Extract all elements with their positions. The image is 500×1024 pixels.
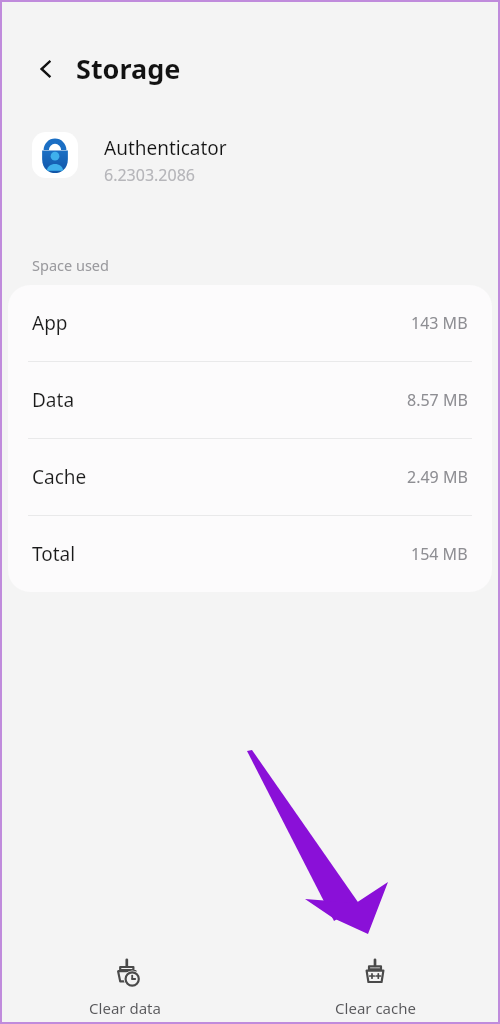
staticText: 6.2303.2086 (104, 164, 195, 186)
staticText: Clear cache (335, 998, 416, 1018)
staticText: Storage (76, 50, 181, 87)
staticText: 2.49 MB (407, 466, 468, 488)
button[interactable]: Clear data (0, 920, 250, 1024)
staticText: 143 MB (411, 312, 468, 334)
staticText: Total (32, 541, 76, 567)
staticText: Authenticator (104, 135, 227, 161)
staticText: Clear data (89, 998, 161, 1018)
button[interactable]: Clear cache (250, 920, 500, 1024)
button[interactable]: Data (8, 362, 492, 438)
button[interactable]: Total (8, 516, 492, 592)
button[interactable]: Back (26, 49, 66, 89)
button[interactable]: App (8, 285, 492, 361)
staticText: 154 MB (411, 543, 468, 565)
staticText: Data (32, 387, 75, 413)
staticText: Cache (32, 464, 87, 490)
staticText: 8.57 MB (407, 389, 468, 411)
staticText: Space used (32, 255, 109, 275)
button[interactable]: Cache (8, 439, 492, 515)
staticText: App (32, 310, 68, 336)
